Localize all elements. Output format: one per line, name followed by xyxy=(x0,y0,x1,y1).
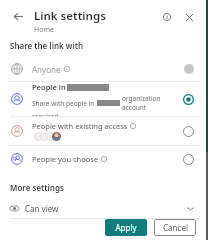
staticText: Link settings xyxy=(34,8,106,24)
button[interactable]: Information xyxy=(158,8,176,26)
staticText: Anyone xyxy=(32,64,61,75)
staticText: Share with people in xyxy=(32,99,95,108)
button[interactable]: Can view xyxy=(0,198,204,218)
staticText: People you choose xyxy=(32,154,99,164)
button: Anyone xyxy=(0,57,204,81)
button[interactable]: People with existing access xyxy=(0,117,204,145)
staticText: organization account xyxy=(122,94,183,112)
staticText: People with existing access xyxy=(32,121,128,131)
staticText: More settings xyxy=(10,182,64,193)
button[interactable]: Cancel xyxy=(154,219,196,236)
staticText: People in xyxy=(32,82,66,92)
button[interactable]: People in xyxy=(0,82,204,116)
button[interactable]: Close xyxy=(180,8,198,26)
button[interactable]: People you choose xyxy=(0,146,204,172)
staticText: Can view xyxy=(25,203,59,214)
staticText: required. xyxy=(32,112,60,116)
staticText: Home xyxy=(34,25,54,32)
staticText: Cancel xyxy=(163,222,188,233)
staticText: Apply xyxy=(115,222,137,233)
button[interactable]: Back xyxy=(10,8,26,24)
staticText: Share the link with xyxy=(10,40,84,51)
button[interactable]: Apply xyxy=(105,219,147,236)
